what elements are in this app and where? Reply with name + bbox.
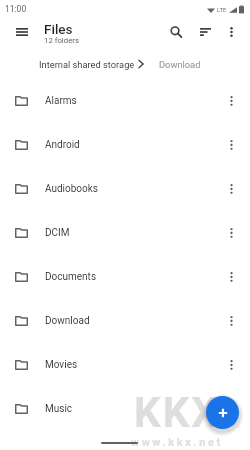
- staticText: Audiobooks: [45, 183, 99, 195]
- button[interactable]: Menu: [11, 21, 33, 43]
- button[interactable]: Add: [206, 396, 239, 429]
- staticText: DCIM: [45, 227, 70, 239]
- button[interactable]: Android: [0, 123, 250, 167]
- staticText: Internal shared storage: [39, 59, 135, 70]
- button[interactable]: DCIM: [0, 211, 250, 255]
- button[interactable]: Audiobooks: [0, 167, 250, 211]
- staticText: Music: [45, 403, 73, 415]
- button[interactable]: More options for Movies: [219, 353, 243, 377]
- button[interactable]: Search: [165, 21, 187, 43]
- button[interactable]: Sort: [194, 21, 216, 43]
- button[interactable]: Alarms: [0, 79, 250, 123]
- staticText: KKX: [134, 388, 221, 437]
- button[interactable]: Download: [159, 56, 201, 73]
- button[interactable]: Internal shared storage: [39, 56, 135, 73]
- staticText: Alarms: [45, 95, 77, 107]
- button[interactable]: More options: [220, 21, 242, 43]
- button[interactable]: More options for Audiobooks: [219, 177, 243, 201]
- staticText: 11:00: [5, 4, 27, 14]
- button[interactable]: Movies: [0, 343, 250, 387]
- staticText: Android: [45, 139, 80, 151]
- button[interactable]: Documents: [0, 255, 250, 299]
- button[interactable]: More options for Android: [219, 133, 243, 157]
- staticText: Download: [159, 59, 201, 70]
- button[interactable]: Music: [0, 387, 250, 431]
- button[interactable]: More options for DCIM: [219, 221, 243, 245]
- button[interactable]: More options for Alarms: [219, 89, 243, 113]
- staticText: Download: [45, 315, 90, 327]
- staticText: Files: [44, 21, 73, 37]
- staticText: 12 folders: [44, 36, 79, 45]
- button[interactable]: More options for Music: [219, 397, 243, 421]
- staticText: Documents: [45, 271, 97, 283]
- staticText: LTE: [217, 6, 227, 13]
- staticText: www.kkx.net: [131, 436, 223, 449]
- button[interactable]: Download: [0, 299, 250, 343]
- button[interactable]: More options for Download: [219, 309, 243, 333]
- button[interactable]: More options for Documents: [219, 265, 243, 289]
- staticText: Movies: [45, 359, 78, 371]
